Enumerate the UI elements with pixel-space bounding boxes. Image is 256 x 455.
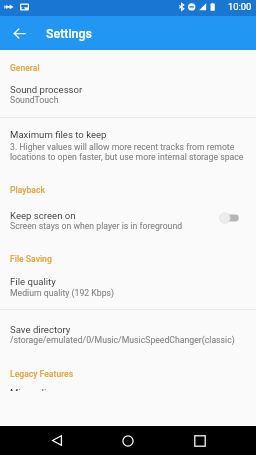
button[interactable]: Home [114,426,142,455]
staticText: 10:00 [228,1,252,12]
staticText: Maximum files to keep [10,129,107,140]
button[interactable]: Back [43,426,71,455]
button[interactable]: Recent apps [186,426,214,455]
staticText: Mic audio [10,389,52,391]
staticText: Legacy Features [10,369,74,379]
button[interactable]: Keep screen on toggle [214,208,244,228]
staticText: Medium quality (192 Kbps) [10,288,115,298]
staticText: Settings [46,26,92,41]
staticText: Keep screen on [10,210,76,221]
staticText: /storage/emulated/0/Music/MusicSpeedChan… [10,335,235,345]
staticText: SoundTouch [10,95,59,105]
staticText: Sound processor [10,84,83,95]
staticText: General [10,63,40,73]
staticText: Playback [10,185,45,195]
staticText: File quality [10,276,56,287]
staticText: Save directory [10,324,71,335]
button[interactable]: Navigate up [11,25,27,41]
staticText: File Saving [10,254,52,264]
staticText: 3. Higher values will allow more recent … [10,142,246,162]
staticText: Screen stays on when player is in foregr… [10,221,183,231]
button[interactable]: Mic audio [0,389,256,391]
